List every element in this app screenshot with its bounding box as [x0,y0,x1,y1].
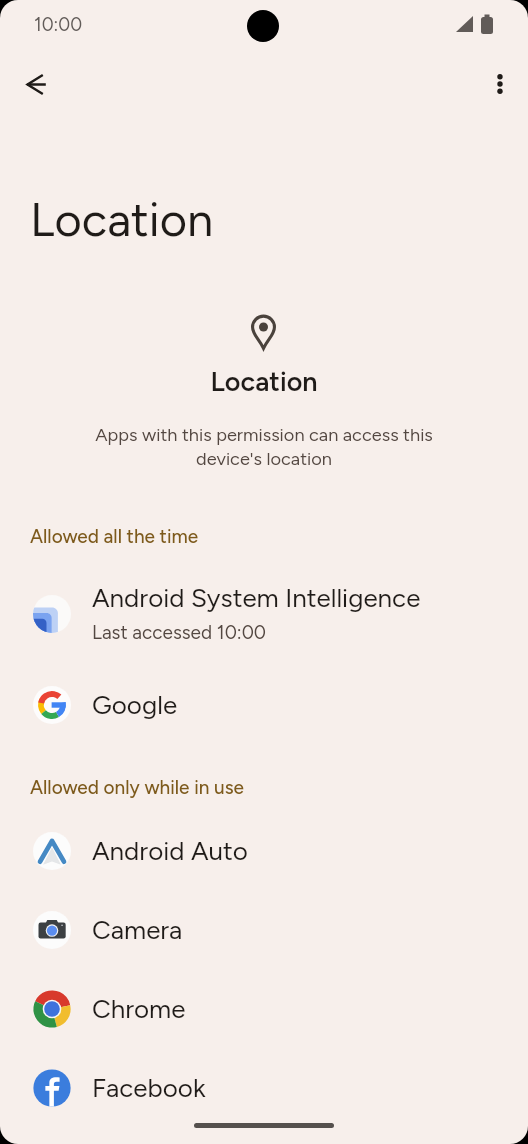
button[interactable]: Back [12,60,60,108]
staticText: Facebook [92,1072,206,1103]
button[interactable]: Android Auto [0,811,528,890]
staticText: Apps with this permission can access thi… [0,424,528,469]
staticText: Android Auto [92,835,248,866]
button[interactable]: More options [476,60,524,108]
staticText: Location [0,365,528,397]
staticText: 10:00 [34,13,83,35]
staticText: Allowed only while in use [30,776,244,799]
staticText: Chrome [92,993,186,1024]
staticText: Camera [92,914,183,945]
button[interactable]: Android System Intelligence [0,574,528,653]
button[interactable]: Google [0,665,528,744]
staticText: Last accessed 10:00 [92,621,267,644]
staticText: Android System Intelligence [92,582,421,613]
button[interactable]: Camera [0,890,528,969]
staticText: Google [92,689,178,720]
button[interactable]: Facebook [0,1048,528,1127]
staticText: Location [30,191,214,247]
staticText: Allowed all the time [30,525,199,548]
button[interactable]: Chrome [0,969,528,1048]
